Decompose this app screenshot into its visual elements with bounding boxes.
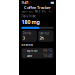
staticText: 10:40 — [43, 54, 52, 58]
staticText: 9:41 — [21, 0, 28, 5]
staticText: Mon — [22, 10, 28, 13]
staticText: 08:15 — [43, 49, 52, 52]
staticText: Latte — [27, 54, 33, 58]
staticText: Tue — [29, 10, 34, 13]
staticText: 3 — [23, 35, 25, 41]
staticText: Fri — [49, 10, 52, 13]
staticText: Last cup — [39, 31, 49, 35]
staticText: Recents — [21, 43, 32, 47]
staticText: Wed — [34, 10, 40, 13]
staticText: ▮▮▮ — [50, 1, 53, 4]
staticText: Thu — [41, 10, 46, 13]
staticText: Espresso — [27, 49, 38, 52]
staticText: 2h — [39, 35, 44, 41]
staticText: Daily Intake — [21, 14, 36, 18]
staticText: Drinks — [23, 31, 31, 35]
staticText: 180 mg — [21, 18, 39, 25]
staticText: Coffee Tracker — [24, 5, 51, 10]
